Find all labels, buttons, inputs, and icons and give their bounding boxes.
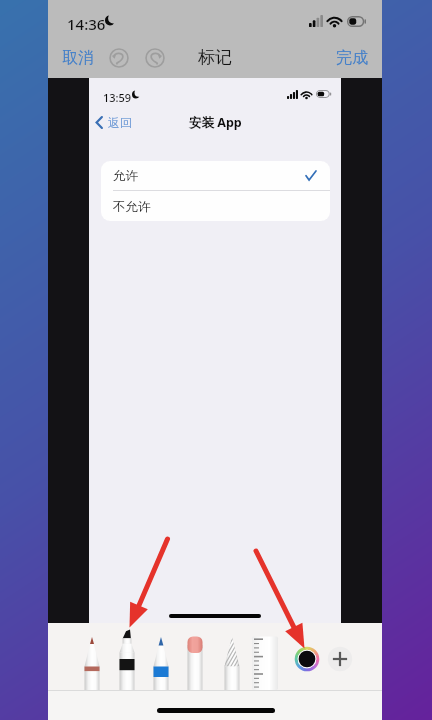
button[interactable]: 完成 [332, 44, 371, 72]
button[interactable]: Pencil [146, 636, 176, 690]
staticText: 标记 [198, 47, 232, 68]
button[interactable]: 允许 [101, 161, 330, 190]
button[interactable]: 取消 [58, 44, 98, 72]
button[interactable]: 返回 [95, 114, 132, 131]
button[interactable]: Colour picker [292, 644, 322, 674]
button[interactable]: Add [327, 646, 353, 672]
staticText: 返回 [108, 115, 132, 130]
staticText: 安装 App [189, 114, 242, 131]
staticText: 完成 [336, 48, 368, 68]
button[interactable]: Redo [142, 45, 168, 71]
button[interactable]: Highlighter [112, 629, 142, 691]
button[interactable]: Pen [77, 636, 107, 690]
staticText: 允许 [113, 168, 138, 184]
staticText: 取消 [62, 48, 94, 68]
button[interactable]: Ruler [249, 636, 281, 690]
button[interactable]: Eraser [180, 636, 210, 690]
staticText: 不允许 [113, 199, 151, 215]
button[interactable]: 不允许 [101, 191, 330, 221]
button[interactable]: Lasso [217, 636, 247, 690]
staticText: 14:36 [67, 14, 106, 34]
button[interactable]: Undo [106, 45, 132, 71]
staticText: 13:59 [103, 90, 132, 105]
